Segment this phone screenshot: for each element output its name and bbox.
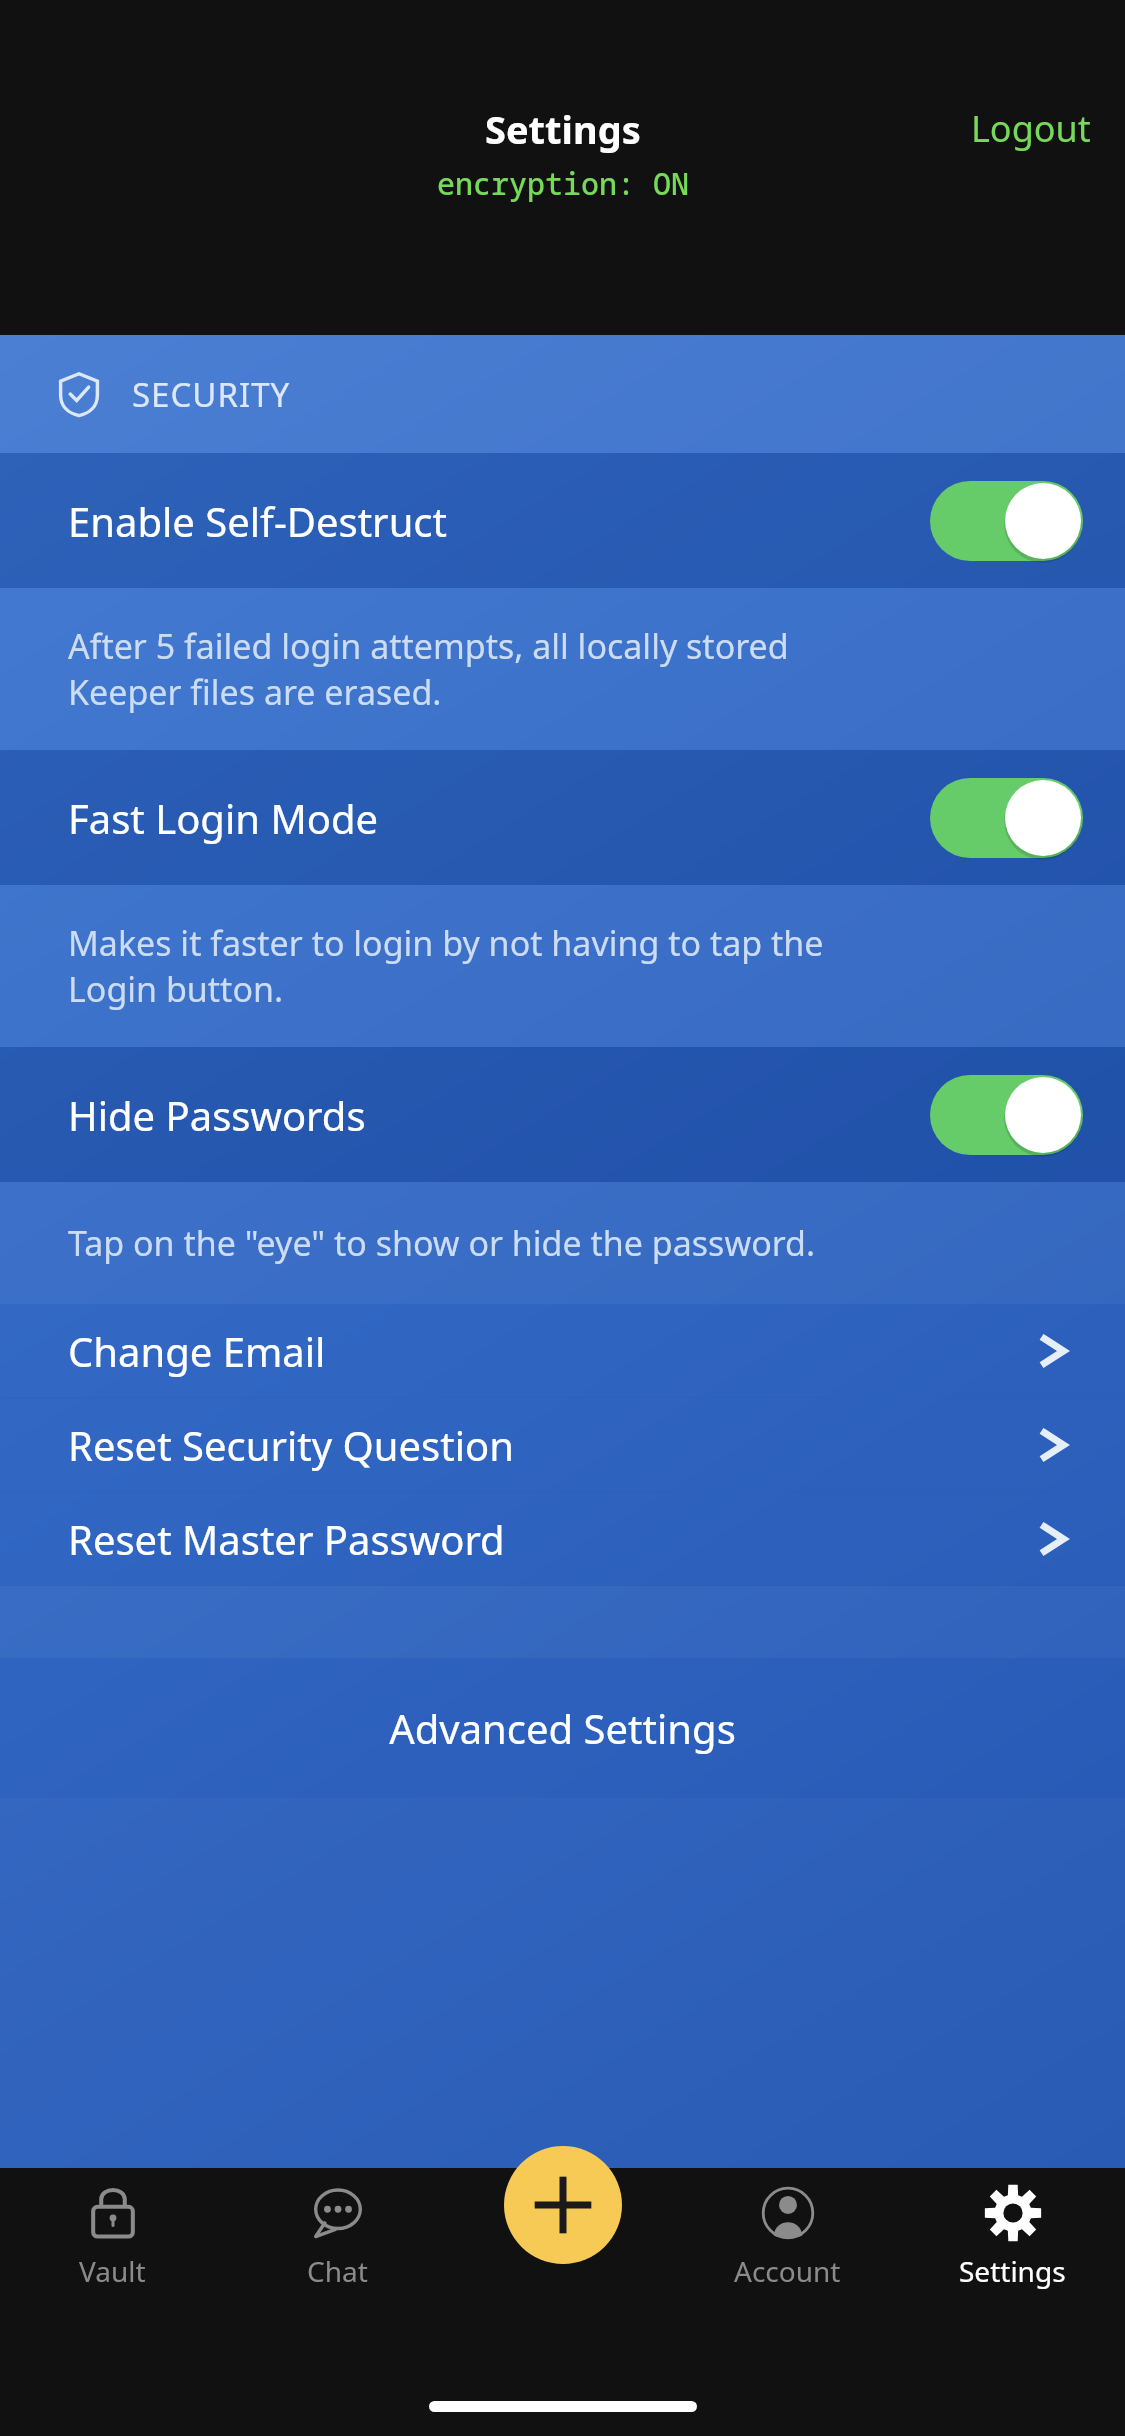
other: Toggle Hide Passwords xyxy=(930,1075,1083,1155)
staticText: Reset Master Password xyxy=(68,1512,505,1566)
staticText: Settings xyxy=(485,103,641,155)
staticText: Makes it faster to login by not having t… xyxy=(68,920,824,1012)
staticText: Reset Security Question xyxy=(68,1418,514,1472)
button[interactable]: Account xyxy=(675,2168,900,2328)
staticText: Account xyxy=(734,2252,841,2290)
staticText: Fast Login Mode xyxy=(68,791,379,845)
staticText: Enable Self-Destruct xyxy=(68,494,447,548)
button[interactable]: Fast Login Mode xyxy=(0,750,1125,885)
staticText: Vault xyxy=(79,2252,146,2290)
button[interactable]: Hide Passwords xyxy=(0,1047,1125,1182)
other: Toggle Enable Self-Destruct xyxy=(930,481,1083,561)
button[interactable]: Advanced Settings xyxy=(0,1658,1125,1798)
button[interactable]: Logout xyxy=(961,96,1101,161)
button[interactable]: Enable Self-Destruct xyxy=(0,453,1125,588)
button[interactable]: Change Email xyxy=(0,1304,1125,1398)
button[interactable]: Reset Security Question xyxy=(0,1398,1125,1492)
staticText: Hide Passwords xyxy=(68,1088,366,1142)
button[interactable]: Reset Master Password xyxy=(0,1492,1125,1586)
staticText: encryption: ON xyxy=(437,163,689,204)
button[interactable]: Settings xyxy=(900,2168,1125,2328)
staticText: After 5 failed login attempts, all local… xyxy=(68,623,789,715)
button[interactable]: Chat xyxy=(225,2168,450,2328)
other: Toggle Fast Login Mode xyxy=(930,778,1083,858)
button[interactable]: Vault xyxy=(0,2168,225,2328)
button[interactable]: Add xyxy=(504,2146,622,2264)
staticText: Logout xyxy=(971,104,1091,153)
staticText: Advanced Settings xyxy=(389,1701,736,1755)
staticText: Change Email xyxy=(68,1324,326,1378)
staticText: Settings xyxy=(959,2252,1066,2290)
staticText: Tap on the "eye" to show or hide the pas… xyxy=(68,1220,816,1266)
staticText: SECURITY xyxy=(132,372,291,417)
staticText: Chat xyxy=(307,2252,368,2290)
